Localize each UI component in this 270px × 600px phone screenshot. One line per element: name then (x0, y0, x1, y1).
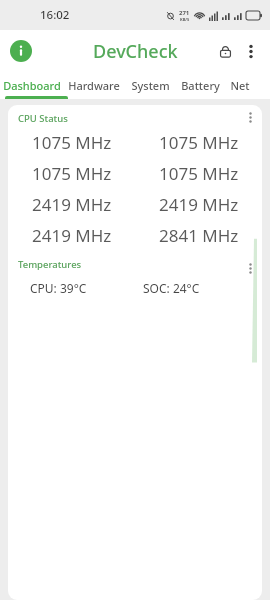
button[interactable]: CPU Status (8, 105, 262, 600)
staticText: CPU: 39°C (30, 280, 87, 296)
staticText: 1075 MHz (32, 162, 112, 185)
staticText: 271 (179, 9, 190, 17)
staticText: CPU Status (18, 112, 68, 125)
staticText: 1075 MHz (32, 131, 112, 154)
button[interactable]: Card options (240, 107, 260, 127)
button[interactable]: Dashboard (0, 72, 63, 99)
staticText: DevCheck (93, 39, 178, 64)
button[interactable]: More options (238, 38, 264, 64)
button[interactable]: Info (10, 40, 32, 62)
button[interactable]: Net (225, 72, 255, 99)
staticText: Battery (181, 78, 220, 93)
staticText: 16:02 (40, 7, 70, 23)
staticText: 1075 MHz (159, 162, 239, 185)
button[interactable]: Card options (240, 258, 260, 278)
staticText: SOC: 24°C (143, 280, 200, 296)
staticText: 2419 MHz (159, 193, 239, 216)
button[interactable]: System (125, 72, 175, 99)
button[interactable]: Lock (212, 38, 238, 64)
staticText: Temperatures (18, 258, 82, 271)
staticText: 2419 MHz (32, 224, 112, 247)
staticText: 1075 MHz (159, 131, 239, 154)
staticText: Hardware (68, 78, 120, 93)
staticText: Dashboard (3, 78, 61, 93)
staticText: 2841 MHz (159, 224, 239, 247)
staticText: System (131, 78, 170, 93)
staticText: 2419 MHz (32, 193, 112, 216)
staticText: Net (230, 78, 250, 93)
button[interactable]: Hardware (63, 72, 125, 99)
staticText: KB/S (180, 17, 190, 22)
button[interactable]: Battery (175, 72, 225, 99)
